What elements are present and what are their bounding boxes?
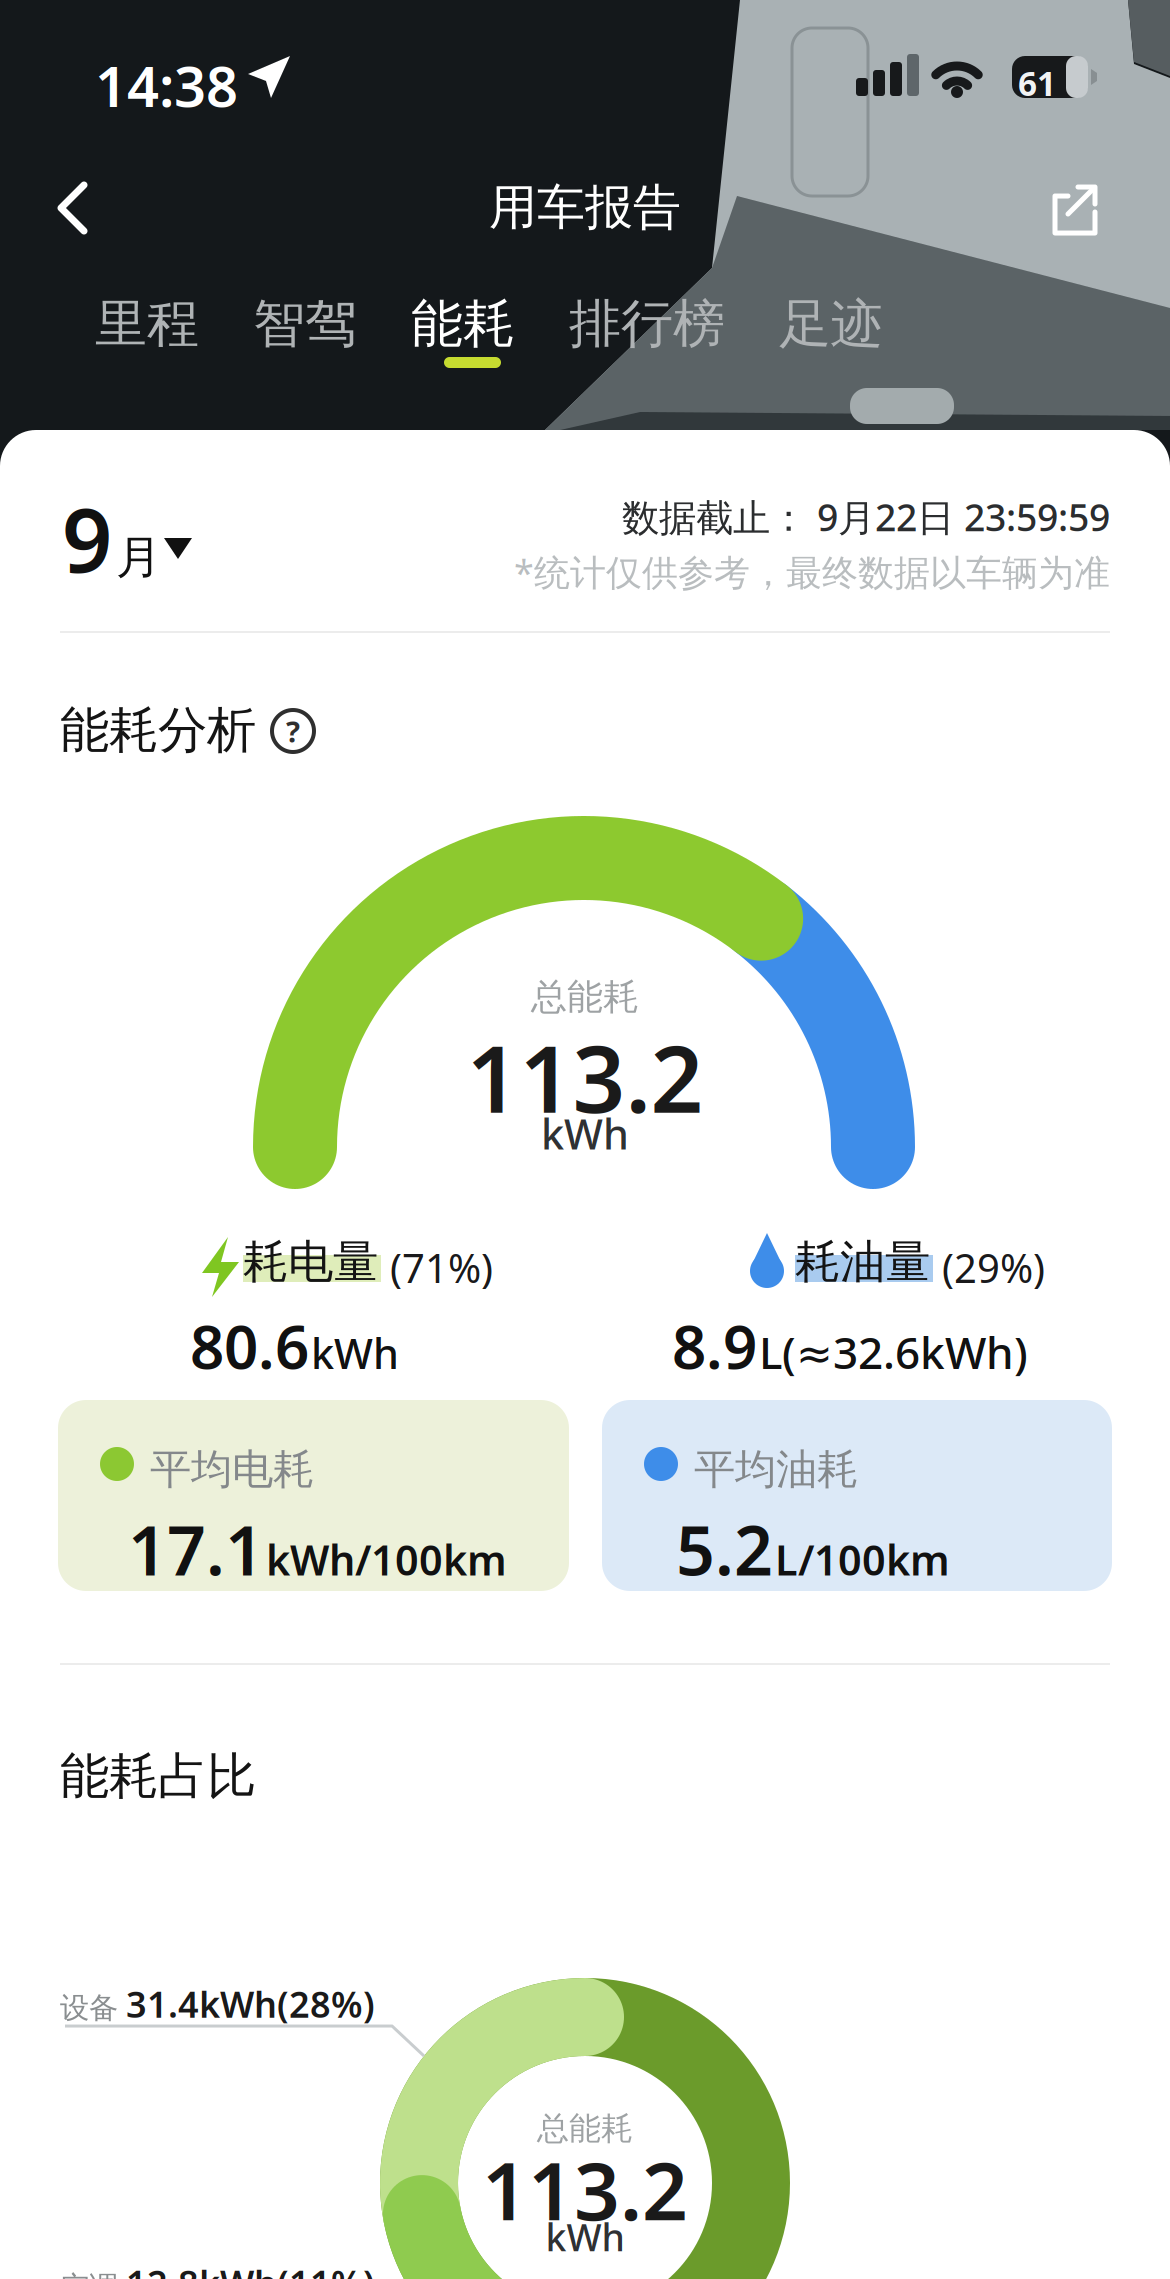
staticText: (71%): [390, 1241, 493, 1294]
staticText: 能耗: [411, 292, 515, 356]
staticText: 足迹: [779, 292, 883, 356]
staticText: 总能耗: [537, 2109, 633, 2148]
button[interactable]: [55, 178, 115, 238]
staticText: 31.4kWh(28%): [126, 1980, 375, 2028]
button[interactable]: 平均油耗: [602, 1400, 1112, 1591]
staticText: 80.6: [190, 1306, 309, 1386]
staticText: 17.1: [128, 1504, 264, 1594]
staticText: 113.2: [482, 2136, 688, 2242]
staticText: 平均电耗: [150, 1444, 314, 1495]
staticText: 耗电量: [243, 1234, 378, 1290]
staticText: 5.2: [676, 1504, 773, 1594]
staticText: 总能耗: [531, 975, 639, 1019]
staticText: kWh: [545, 2212, 624, 2262]
button[interactable]: 平均电耗: [58, 1400, 569, 1591]
staticText: 能耗占比: [60, 1746, 256, 1807]
staticText: kWh/100km: [266, 1532, 507, 1587]
button[interactable]: 足迹: [779, 292, 883, 356]
staticText: 61: [1018, 61, 1056, 105]
staticText: 12.8kWh(11%): [126, 2259, 375, 2279]
button[interactable]: 智驾: [253, 292, 357, 356]
staticText: *统计仅供参考，最终数据以车辆为准: [514, 548, 1110, 596]
staticText: 智驾: [253, 292, 357, 356]
button[interactable]: 排行榜: [569, 292, 725, 356]
staticText: 9: [62, 480, 112, 597]
staticText: 用车报告: [489, 178, 681, 237]
staticText: 空调: [60, 2269, 118, 2279]
staticText: 8.9: [672, 1306, 757, 1386]
staticText: 里程: [95, 292, 199, 356]
staticText: 14:38: [95, 48, 238, 122]
staticText: 平均油耗: [694, 1444, 858, 1495]
button[interactable]: 能耗: [411, 292, 515, 356]
staticText: 月: [116, 530, 161, 585]
staticText: (29%): [942, 1241, 1045, 1294]
staticText: L/100km: [775, 1532, 950, 1587]
staticText: kWh: [541, 1106, 629, 1161]
staticText: 设备: [60, 1990, 118, 2026]
button[interactable]: ?: [272, 710, 314, 752]
staticText: 数据截止： 9月22日 23:59:59: [622, 492, 1110, 542]
staticText: 113.2: [466, 1016, 703, 1138]
staticText: kWh: [311, 1326, 399, 1380]
staticText: 排行榜: [569, 292, 725, 356]
button[interactable]: [1040, 178, 1110, 248]
staticText: ?: [286, 711, 300, 750]
staticText: 耗油量: [795, 1234, 930, 1290]
button[interactable]: 里程: [95, 292, 199, 356]
staticText: 能耗分析: [60, 700, 256, 761]
button[interactable]: 9: [62, 480, 282, 610]
staticText: L(≈32.6kWh): [759, 1323, 1028, 1381]
